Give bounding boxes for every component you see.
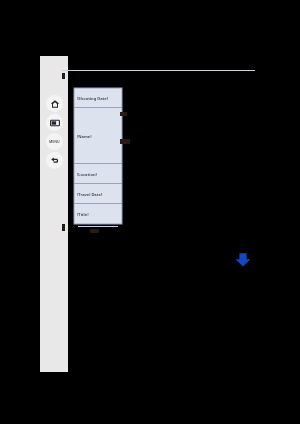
button[interactable]: [Shooting Date] (74, 88, 122, 108)
button[interactable]: Download (234, 250, 252, 268)
button[interactable]: [Name] (74, 108, 122, 164)
staticText: [Shooting Date] (77, 96, 108, 101)
staticText: [Title] (77, 212, 89, 217)
staticText: MENU (49, 139, 60, 144)
button[interactable]: Back (46, 152, 63, 169)
button[interactable]: [Title] (74, 204, 122, 224)
staticText: [Location] (77, 172, 97, 177)
button[interactable]: MENU (46, 133, 63, 150)
button[interactable]: [Location] (74, 164, 122, 184)
button[interactable]: [Travel Date] (74, 184, 122, 204)
staticText: [Name] (77, 134, 92, 139)
button[interactable]: Home (46, 95, 63, 112)
staticText: [Travel Date] (77, 192, 103, 197)
button[interactable]: Display (46, 114, 63, 131)
